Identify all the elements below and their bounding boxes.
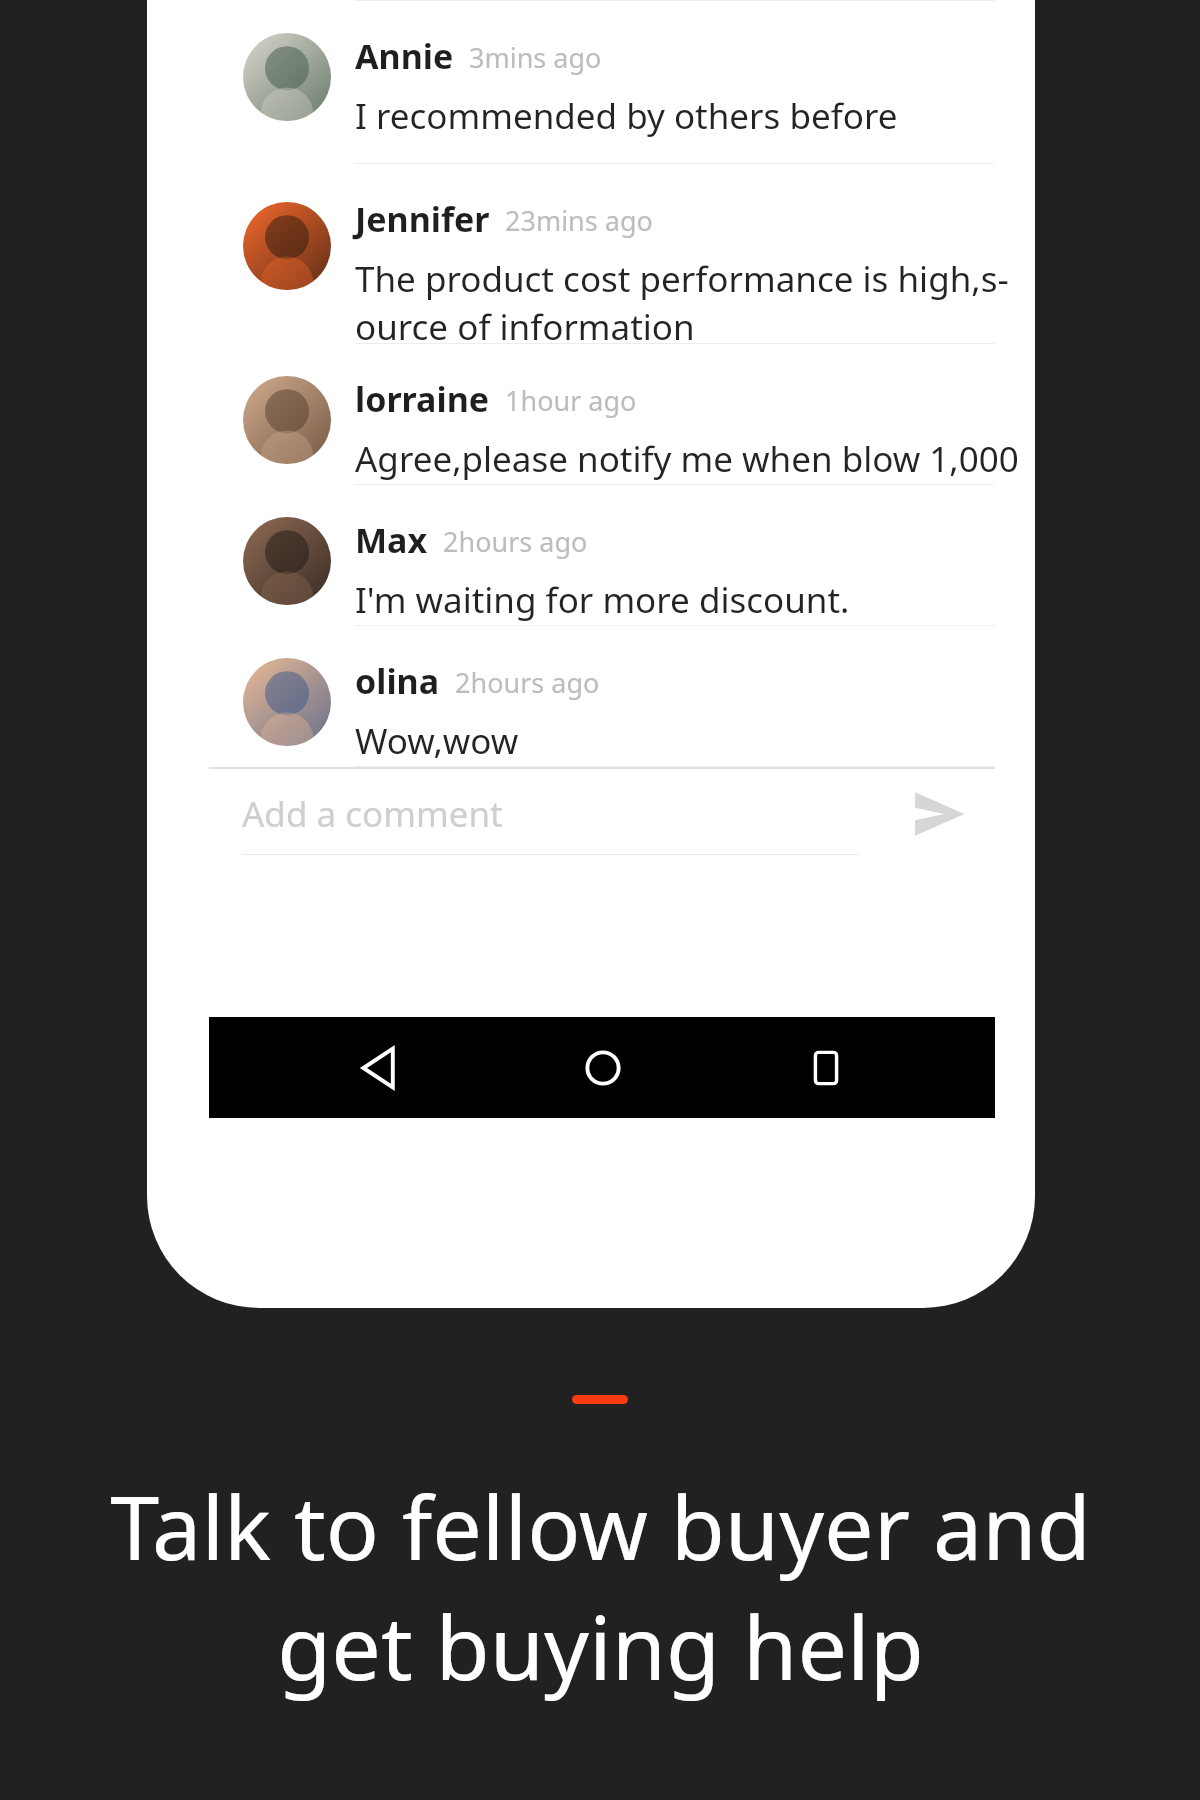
staticText: I recommended by others before xyxy=(355,92,898,140)
staticText: lorraine xyxy=(355,376,490,422)
button[interactable]: Home xyxy=(491,1017,714,1118)
staticText: Talk to fellow buyer and xyxy=(110,1466,1091,1586)
staticText: 2hours ago xyxy=(443,523,588,560)
staticText: Add a comment xyxy=(242,790,503,838)
button[interactable]: lorraine xyxy=(209,344,995,485)
button[interactable]: Add a comment xyxy=(209,769,995,871)
staticText: olina xyxy=(355,658,440,704)
staticText: Agree,please notify me when blow 1,000 xyxy=(355,435,1019,483)
staticText: Jennifer xyxy=(355,196,490,242)
staticText: I'm waiting for more discount. xyxy=(355,576,850,624)
button[interactable]: Recents xyxy=(714,1017,937,1118)
staticText: 3mins ago xyxy=(469,39,602,76)
button[interactable]: olina xyxy=(209,626,995,767)
button[interactable]: Max xyxy=(209,485,995,626)
staticText: 2hours ago xyxy=(455,664,600,701)
staticText: ource of information xyxy=(355,303,695,351)
button[interactable]: Jennifer xyxy=(209,164,995,344)
staticText: The product cost performance is high,s- xyxy=(355,255,1009,303)
button[interactable]: Annie xyxy=(209,1,995,164)
staticText: Max xyxy=(355,517,428,563)
staticText: Annie xyxy=(355,33,454,79)
button[interactable]: Send xyxy=(883,769,995,871)
staticText: Wow,wow xyxy=(355,717,519,765)
staticText: 23mins ago xyxy=(505,202,653,239)
staticText: get buying help xyxy=(277,1586,924,1706)
button[interactable]: Back xyxy=(267,1017,491,1118)
staticText: 1hour ago xyxy=(505,382,637,419)
